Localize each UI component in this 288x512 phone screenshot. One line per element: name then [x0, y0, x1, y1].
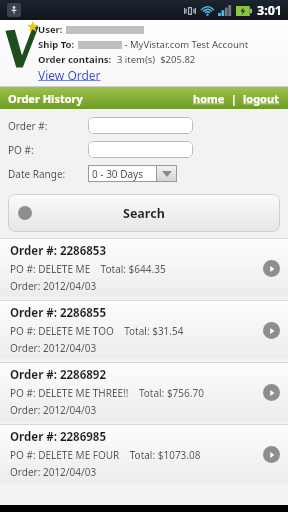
staticText: 3 item(s) $205.82	[112, 53, 196, 66]
staticText: PO #: DELETE ME TOO Total: $31.54	[10, 324, 184, 338]
staticText: Order History	[8, 91, 83, 106]
button[interactable]	[88, 117, 193, 134]
staticText: PO #:	[8, 143, 34, 157]
button[interactable]: logout	[243, 91, 279, 106]
staticText: PO #: DELETE ME THREE!! Total: $756.70	[10, 386, 204, 400]
button[interactable]: Search	[8, 194, 280, 232]
staticText: - MyVistar.com Test Account	[122, 38, 249, 51]
staticText: 3:01	[257, 2, 282, 19]
staticText: Search	[123, 205, 165, 222]
staticText: Order #: 2286853	[10, 243, 106, 259]
button[interactable]: Order #: 2286985	[0, 425, 288, 483]
button[interactable]	[88, 141, 193, 158]
staticText: PO #: DELETE ME FOUR Total: $1073.08	[10, 448, 201, 462]
other: Open order 2286855	[263, 322, 280, 339]
other: Open order 2286892	[263, 384, 280, 401]
button[interactable]: Order #: 2286892	[0, 363, 288, 421]
staticText: Ship To:	[38, 38, 75, 51]
staticText: User:	[38, 23, 63, 36]
staticText: Order contains:	[38, 53, 112, 66]
staticText: PO #: DELETE ME Total: $644.35	[10, 262, 166, 276]
staticText: Order #: 2286892	[10, 367, 106, 383]
button[interactable]: Order #: 2286855	[0, 301, 288, 359]
staticText: Order #: 2286985	[10, 429, 106, 445]
other: Open order 2286853	[263, 260, 280, 277]
staticText: Order: 2012/04/03	[10, 465, 97, 479]
other: Open order 2286985	[263, 446, 280, 463]
button[interactable]: home	[193, 91, 225, 106]
staticText: Order: 2012/04/03	[10, 341, 97, 355]
staticText: Order #: 2286855	[10, 305, 106, 321]
staticText: 0 - 30 Days	[92, 167, 143, 181]
staticText: |	[225, 91, 243, 106]
button[interactable]: 0 - 30 Days	[88, 165, 177, 182]
button[interactable]: Order #: 2286853	[0, 239, 288, 297]
staticText: Date Range:	[8, 167, 66, 181]
staticText: Order: 2012/04/03	[10, 279, 97, 293]
staticText: Order: 2012/04/03	[10, 403, 97, 417]
button[interactable]: View Order	[38, 67, 101, 83]
staticText: Order #:	[8, 119, 48, 133]
